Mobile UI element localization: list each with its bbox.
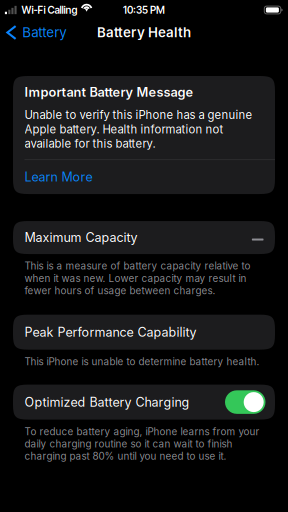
staticText: Important Battery Message [24, 84, 193, 100]
staticText: Maximum Capacity [24, 230, 137, 245]
staticText: Battery [22, 24, 66, 40]
button[interactable]: Battery [0, 21, 74, 48]
staticText: To reduce battery aging, iPhone learns f… [24, 426, 259, 462]
staticText: This is a measure of battery capacity re… [24, 260, 250, 297]
staticText: Battery Health [97, 24, 191, 40]
staticText: Peak Performance Capability [24, 325, 196, 340]
staticText: Wi-Fi Calling [21, 4, 77, 16]
staticText: 10:35 PM [123, 4, 165, 16]
button[interactable]: Learn More [13, 160, 275, 194]
staticText: This iPhone is unable to determine batte… [24, 356, 259, 367]
staticText: Unable to verify this iPhone has a genui… [24, 108, 252, 150]
button[interactable]: Optimized Battery Charging [225, 390, 265, 414]
staticText: Learn More [24, 169, 92, 185]
staticText: Optimized Battery Charging [24, 394, 189, 410]
